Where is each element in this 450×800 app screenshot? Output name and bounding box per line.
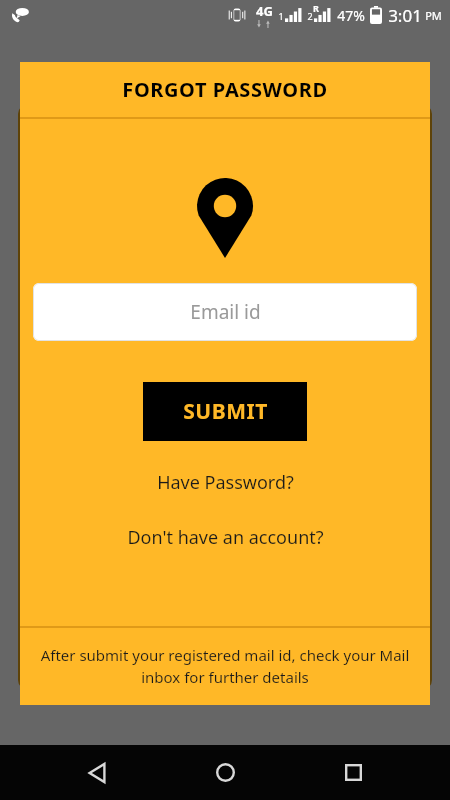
button[interactable]: Back [68,745,128,800]
staticText: FORGOT PASSWORD [122,76,328,103]
staticText: R [313,2,319,14]
button[interactable]: Recent apps [323,745,383,800]
staticText: 1 [278,10,284,22]
other: Location marker [197,178,253,258]
button[interactable]: Don't have an account? [115,521,336,554]
staticText: 4G [256,2,273,20]
button[interactable]: Home [195,745,255,800]
staticText: Have Password? [157,470,294,495]
staticText: After submit your registered mail id, ch… [38,645,412,688]
staticText: SUBMIT [183,397,268,426]
staticText: Email id [190,299,261,325]
staticText: Don't have an account? [127,525,324,550]
staticText: 2 [307,10,313,22]
button[interactable]: Have Password? [145,466,306,499]
button[interactable]: Email id [33,283,417,341]
staticText: 3:01 [388,4,422,27]
staticText: 47% [337,6,365,25]
staticText: PM [425,8,442,23]
button[interactable]: SUBMIT [143,382,307,441]
